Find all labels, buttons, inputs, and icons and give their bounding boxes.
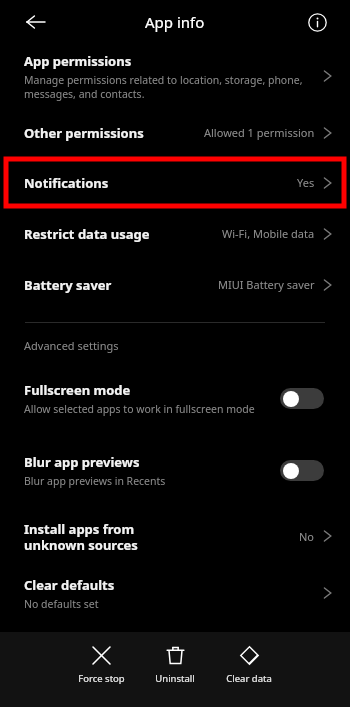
staticText: Advanced settings [24, 338, 119, 353]
button[interactable]: Back [20, 6, 52, 38]
staticText: Blur app previews in Recents [24, 474, 166, 488]
button[interactable]: Blur app previews toggle [280, 460, 324, 481]
button[interactable]: Battery saver [0, 259, 350, 310]
staticText: Clear data [226, 672, 272, 685]
staticText: Blur app previews [24, 453, 140, 471]
button[interactable]: Notifications [24, 159, 333, 206]
button[interactable]: Restrict data usage [0, 208, 350, 259]
button[interactable]: Clear data [212, 644, 286, 685]
staticText: App info [145, 12, 205, 32]
button[interactable]: Uninstall [138, 644, 212, 685]
staticText: Restrict data usage [24, 225, 150, 243]
staticText: App permissions [24, 52, 132, 70]
staticText: MIUI Battery saver [218, 277, 315, 292]
button[interactable]: Force stop [64, 644, 138, 685]
staticText: Clear defaults [24, 576, 115, 594]
staticText: No [299, 529, 315, 544]
staticText: Yes [297, 175, 315, 190]
staticText: Fullscreen mode [24, 381, 131, 399]
button[interactable]: App permissions [0, 43, 350, 109]
staticText: Wi-Fi, Mobile data [222, 226, 315, 241]
button[interactable]: Blur app previews [0, 440, 350, 500]
button[interactable]: Fullscreen mode toggle [280, 388, 324, 409]
staticText: Force stop [78, 672, 125, 685]
staticText: Other permissions [24, 124, 144, 142]
button[interactable]: Install apps from unknown sources [0, 508, 350, 564]
staticText: Allow selected apps to work in fullscree… [24, 402, 255, 416]
staticText: Manage permissions related to location, … [24, 73, 303, 101]
staticText: Install apps from unknown sources [24, 520, 138, 553]
staticText: Battery saver [24, 276, 112, 294]
staticText: Allowed 1 permission [204, 125, 315, 140]
button[interactable]: Other permissions [0, 109, 350, 156]
staticText: Uninstall [155, 672, 195, 685]
staticText: No defaults set [24, 597, 99, 611]
button[interactable]: Fullscreen mode [0, 368, 350, 428]
staticText: Notifications [24, 174, 297, 192]
button[interactable]: App details [303, 8, 331, 36]
button[interactable]: Clear defaults [0, 568, 350, 618]
